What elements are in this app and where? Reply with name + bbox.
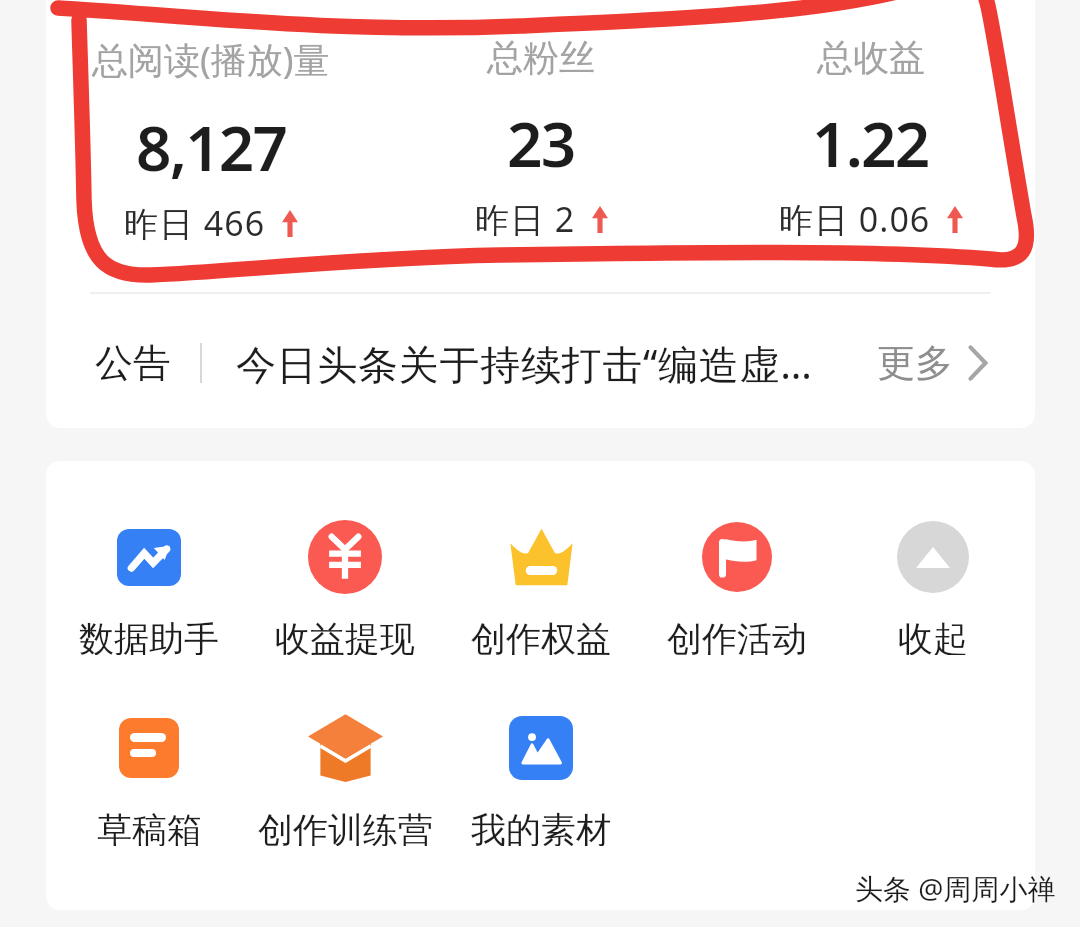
button[interactable]: 公告 <box>46 293 1035 433</box>
staticText: 草稿箱 <box>97 808 202 846</box>
staticText: 收起 <box>898 617 968 655</box>
button[interactable]: 总收益 <box>706 0 1035 250</box>
staticText: 创作权益 <box>471 617 611 655</box>
staticText: 我的素材 <box>471 808 611 846</box>
staticText: 1.22 <box>812 101 929 185</box>
button[interactable]: Data assistant <box>51 519 247 655</box>
staticText: 头条 @周周小禅 <box>855 869 1056 907</box>
staticText: 昨日 0.06 <box>779 196 931 242</box>
staticText: 昨日 466 <box>124 200 266 246</box>
button[interactable]: Creator events <box>639 519 835 655</box>
staticText: 23 <box>507 101 575 185</box>
button[interactable]: Creator benefits <box>443 519 639 655</box>
button[interactable]: Creator camp <box>247 710 443 846</box>
staticText: 收益提现 <box>275 617 415 655</box>
staticText: 8,127 <box>136 105 287 189</box>
staticText: 数据助手 <box>79 617 219 655</box>
button[interactable]: 总粉丝 <box>376 0 706 250</box>
button[interactable]: Collapse <box>835 519 1030 655</box>
button[interactable]: Withdraw earnings <box>247 519 443 655</box>
staticText: 公告 <box>95 339 171 387</box>
button[interactable]: 总阅读(播放)量 <box>46 0 376 250</box>
staticText: 总收益 <box>817 35 925 80</box>
staticText: 总粉丝 <box>487 35 595 80</box>
staticText: 更多 <box>877 339 953 387</box>
staticText: 今日头条关于持续打击“编造虚… <box>236 336 813 391</box>
button[interactable]: My materials <box>443 710 639 846</box>
staticText: 创作训练营 <box>258 808 433 846</box>
staticText: 创作活动 <box>667 617 807 655</box>
staticText: 昨日 2 <box>475 196 576 242</box>
button[interactable]: Drafts <box>51 710 247 846</box>
staticText: 总阅读(播放)量 <box>92 35 330 84</box>
